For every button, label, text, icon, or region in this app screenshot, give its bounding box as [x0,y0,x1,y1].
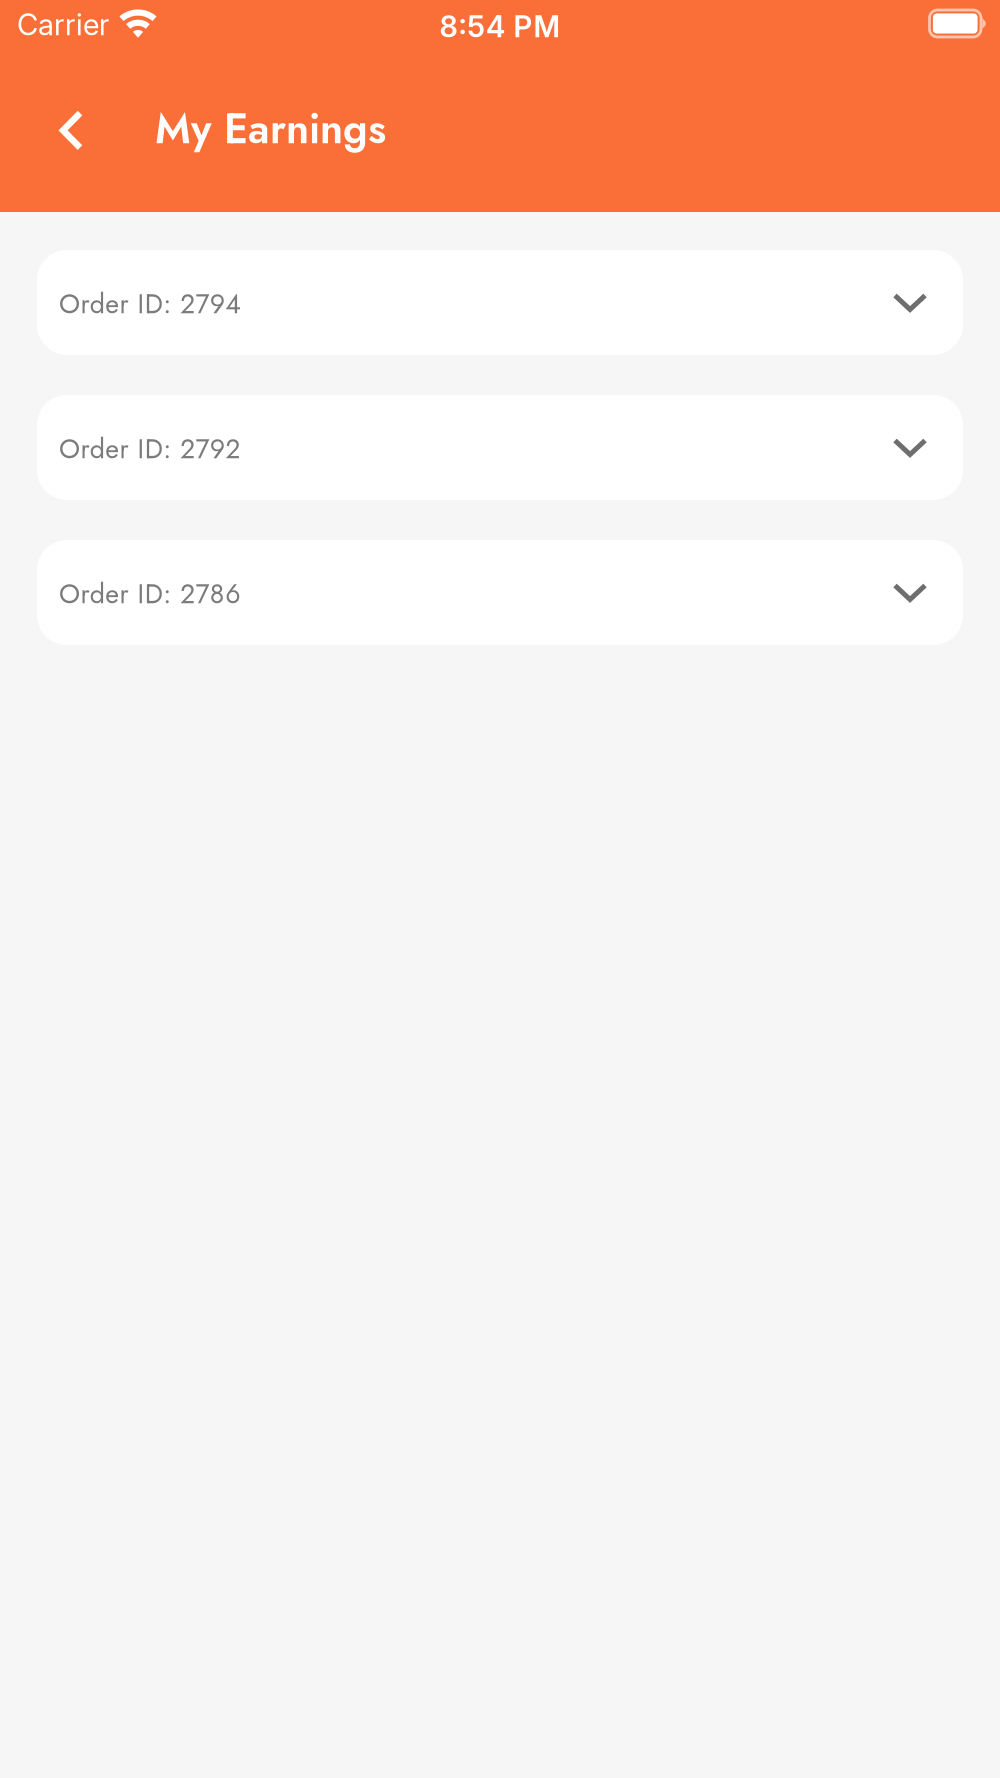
staticText: 8:54 PM [440,9,560,44]
button[interactable]: Order ID: 2792 [37,395,963,500]
staticText: Order ID: 2792 [59,430,240,468]
staticText: Order ID: 2794 [59,285,241,323]
button[interactable]: Order ID: 2794 [37,250,963,355]
button[interactable]: Order ID: 2786 [37,540,963,645]
staticText: Carrier [17,7,109,42]
button[interactable] [0,100,80,158]
staticText: Order ID: 2786 [59,575,240,613]
staticText: My Earnings [155,99,386,159]
